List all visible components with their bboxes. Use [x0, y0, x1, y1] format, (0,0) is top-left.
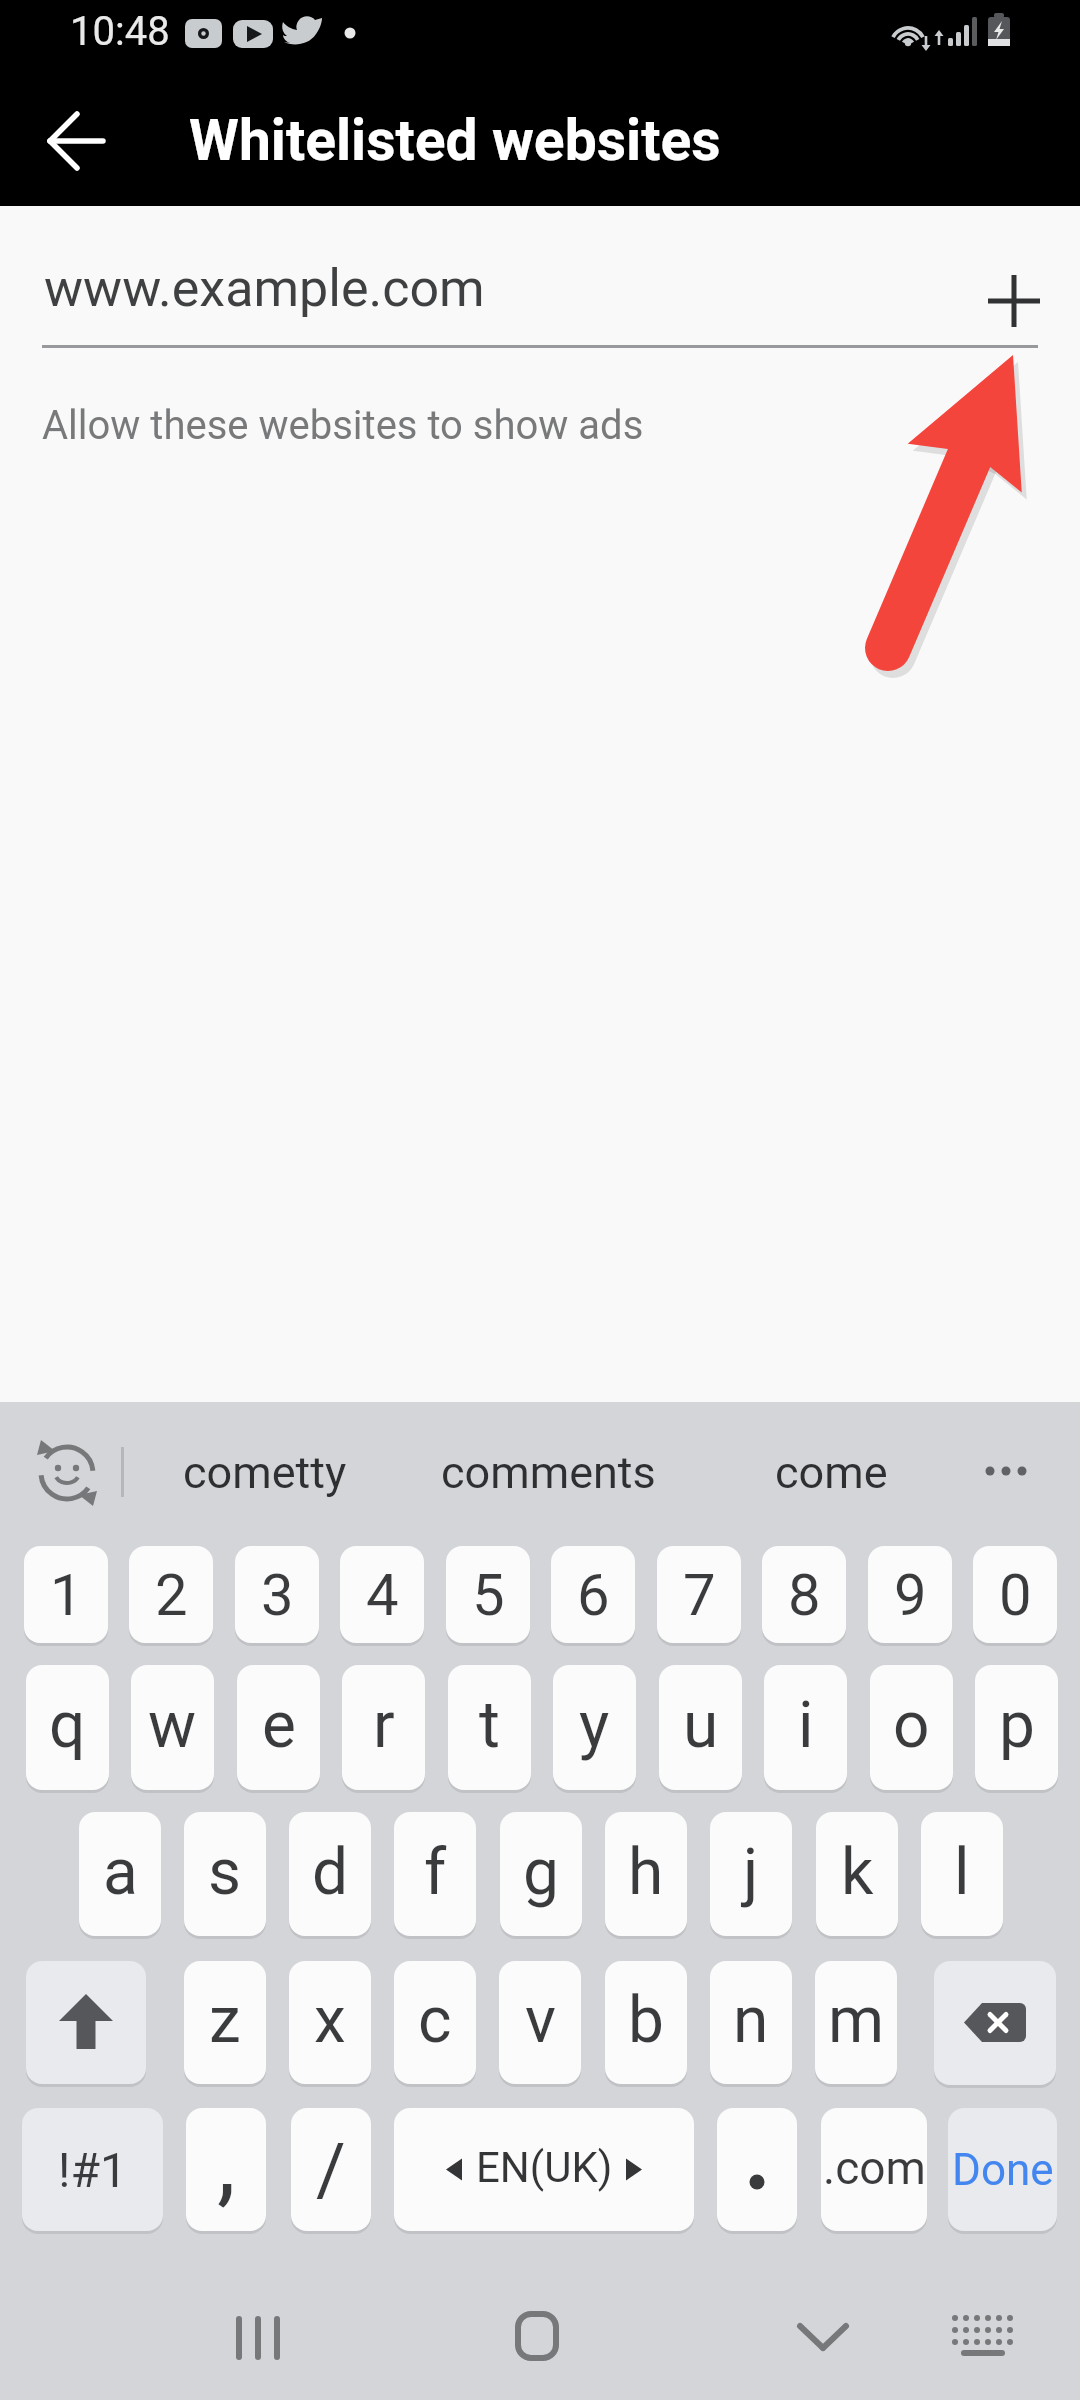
staticText: m — [828, 1983, 885, 2058]
staticText: comments — [441, 1446, 656, 1499]
staticText: 10:48 — [70, 8, 170, 55]
staticText: q — [49, 1688, 86, 1763]
staticText: Whitelisted websites — [189, 107, 721, 174]
staticText: come — [775, 1446, 888, 1499]
button[interactable]: 7 — [657, 1546, 741, 1643]
staticText: l — [954, 1835, 970, 1910]
button[interactable]: e — [237, 1665, 320, 1790]
button[interactable]: r — [342, 1665, 425, 1790]
staticText: b — [628, 1983, 664, 2058]
button[interactable]: p — [975, 1665, 1058, 1790]
button[interactable]: v — [499, 1961, 581, 2084]
button[interactable]: / — [291, 2108, 371, 2231]
staticText: t — [479, 1688, 500, 1763]
button[interactable]: q — [26, 1665, 109, 1790]
staticText: 1 — [50, 1561, 83, 1629]
button[interactable]: z — [184, 1961, 266, 2084]
button[interactable]: h — [605, 1812, 687, 1936]
button[interactable]: m — [815, 1961, 897, 2084]
staticText: n — [733, 1983, 769, 2058]
staticText: 4 — [366, 1561, 399, 1629]
button[interactable]: u — [659, 1665, 742, 1790]
staticText: EN(UK) — [476, 2143, 613, 2192]
button[interactable]: s — [184, 1812, 266, 1936]
button[interactable]: j — [710, 1812, 792, 1936]
staticText: .com — [823, 2141, 926, 2195]
button[interactable]: cometty — [140, 1442, 390, 1502]
button[interactable]: 3 — [235, 1546, 319, 1643]
staticText: , — [217, 2108, 236, 2217]
button[interactable]: i — [764, 1665, 847, 1790]
staticText: g — [523, 1835, 559, 1910]
button[interactable]: 5 — [446, 1546, 530, 1643]
button[interactable]: o — [870, 1665, 953, 1790]
button[interactable]: !#1 — [22, 2108, 163, 2231]
button[interactable]: a — [79, 1812, 161, 1936]
staticText: 9 — [894, 1561, 927, 1629]
staticText: w — [148, 1688, 197, 1763]
button[interactable]: come — [706, 1442, 956, 1502]
staticText: f — [424, 1835, 447, 1910]
staticText: 6 — [577, 1561, 610, 1629]
staticText: 7 — [683, 1561, 716, 1629]
staticText: c — [418, 1983, 452, 2058]
button[interactable]: y — [553, 1665, 636, 1790]
staticText: p — [999, 1688, 1035, 1763]
staticText: a — [103, 1835, 138, 1910]
button[interactable]: k — [816, 1812, 898, 1936]
button[interactable]: 6 — [551, 1546, 635, 1643]
staticText: z — [209, 1983, 241, 2058]
button[interactable]: f — [394, 1812, 476, 1936]
button[interactable]: 1 — [24, 1546, 108, 1643]
button[interactable] — [717, 2108, 797, 2231]
button[interactable]: comments — [420, 1442, 676, 1502]
button[interactable] — [26, 1961, 146, 2084]
staticText: d — [312, 1835, 349, 1910]
button[interactable]: 8 — [762, 1546, 846, 1643]
staticText: o — [893, 1688, 930, 1763]
button[interactable]: 2 — [129, 1546, 213, 1643]
staticText: j — [743, 1835, 759, 1910]
staticText: !#1 — [58, 2142, 127, 2198]
staticText: h — [628, 1835, 664, 1910]
button[interactable]: c — [394, 1961, 476, 2084]
staticText: 5 — [472, 1561, 505, 1629]
button[interactable]: n — [710, 1961, 792, 2084]
button[interactable]: 9 — [868, 1546, 952, 1643]
staticText: Allow these websites to show ads — [42, 402, 644, 449]
staticText: s — [208, 1835, 242, 1910]
button[interactable]: 0 — [973, 1546, 1057, 1643]
staticText: v — [525, 1983, 556, 2058]
staticText: i — [798, 1688, 814, 1763]
button[interactable]: EN(UK) — [394, 2108, 694, 2231]
button[interactable]: t — [448, 1665, 531, 1790]
button[interactable]: b — [605, 1961, 687, 2084]
staticText: / — [316, 2128, 346, 2212]
staticText: 8 — [788, 1561, 821, 1629]
staticText: u — [683, 1688, 719, 1763]
button[interactable]: , — [186, 2108, 266, 2231]
button[interactable]: l — [921, 1812, 1003, 1936]
staticText: www.example.com — [44, 258, 485, 319]
button[interactable] — [980, 267, 1048, 335]
staticText: y — [579, 1688, 610, 1763]
staticText: 0 — [999, 1561, 1032, 1629]
button[interactable]: 4 — [340, 1546, 424, 1643]
staticText: k — [841, 1835, 874, 1910]
button[interactable]: g — [500, 1812, 582, 1936]
staticText: e — [262, 1688, 296, 1763]
button[interactable]: w — [131, 1665, 214, 1790]
staticText: cometty — [183, 1446, 347, 1499]
staticText: x — [314, 1983, 346, 2058]
staticText: 2 — [155, 1561, 188, 1629]
button[interactable]: .com — [821, 2108, 927, 2231]
button[interactable]: x — [289, 1961, 371, 2084]
button[interactable]: d — [289, 1812, 371, 1936]
staticText: Done — [952, 2144, 1054, 2196]
button[interactable]: Done — [948, 2108, 1057, 2231]
button[interactable] — [28, 117, 124, 165]
staticText: 3 — [261, 1561, 294, 1629]
staticText: r — [373, 1688, 395, 1763]
button[interactable] — [28, 1432, 106, 1510]
button[interactable] — [934, 1961, 1056, 2085]
